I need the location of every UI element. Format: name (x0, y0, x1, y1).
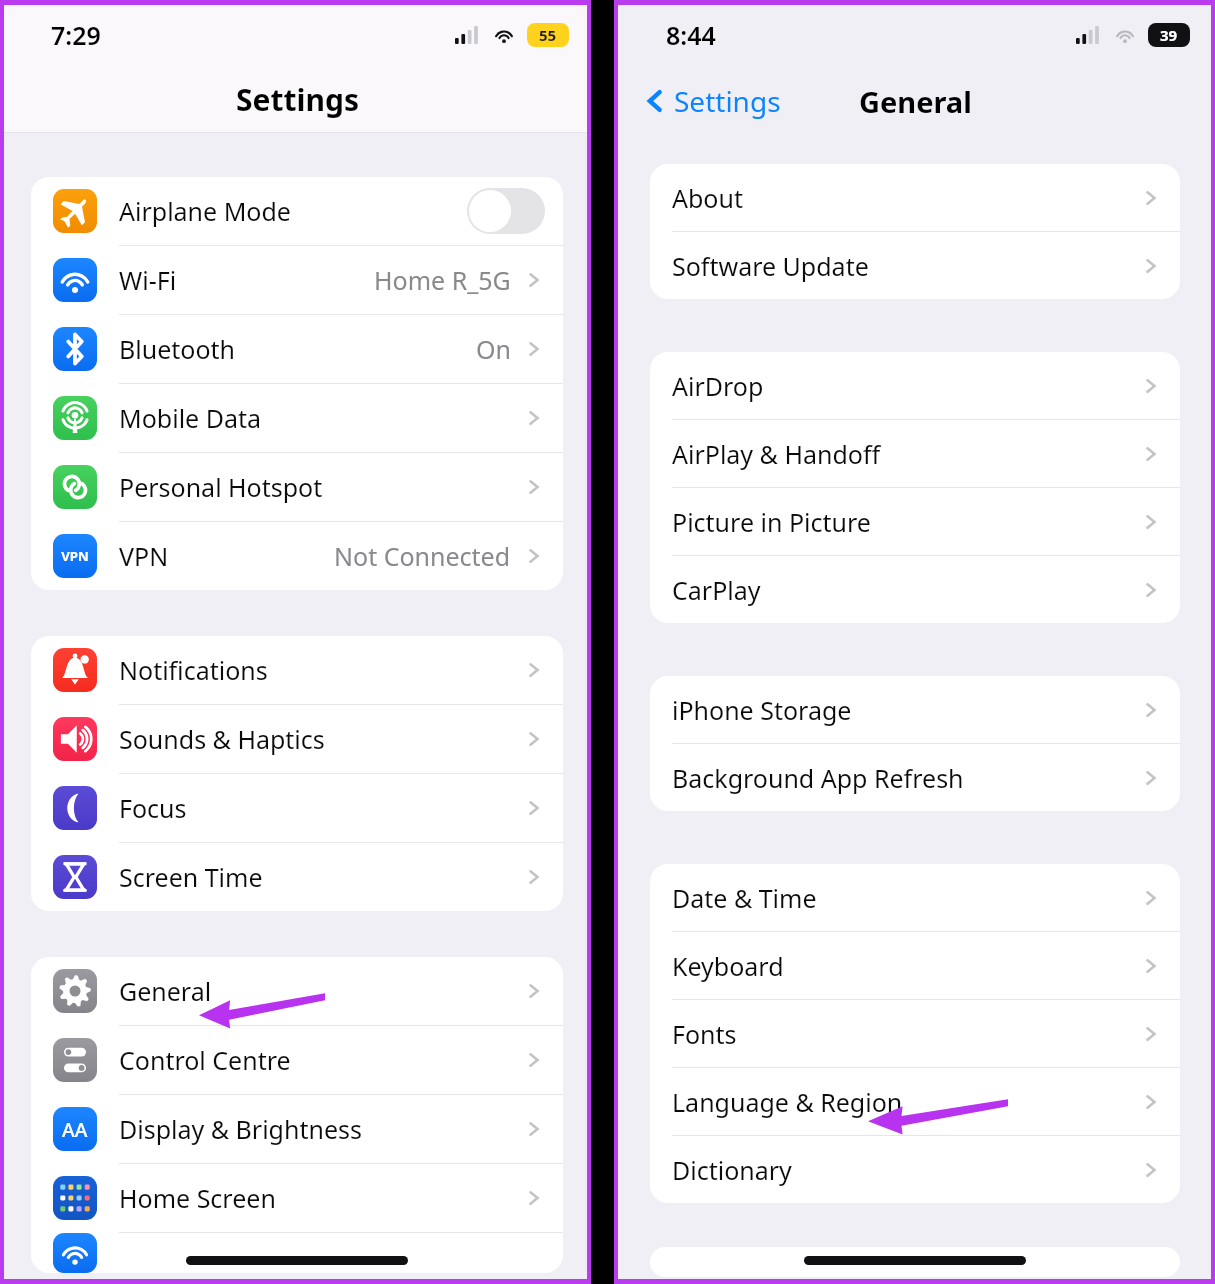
button[interactable]: AA (31, 1095, 563, 1163)
staticText: Bluetooth (119, 332, 236, 366)
button[interactable]: Settings (636, 76, 787, 126)
button[interactable]: CarPlay (650, 556, 1180, 623)
staticText: CarPlay (672, 573, 761, 607)
staticText: 7:29 (51, 18, 101, 52)
button[interactable]: iPhone Storage (650, 676, 1180, 743)
staticText: About (672, 181, 743, 215)
button[interactable]: Keyboard (650, 932, 1180, 999)
staticText: Not Connected (334, 539, 511, 573)
staticText: AirPlay & Handoff (672, 437, 881, 471)
button[interactable]: Date & Time (650, 864, 1180, 931)
staticText: Fonts (672, 1017, 737, 1051)
staticText: Language & Region (672, 1085, 903, 1119)
staticText: Control Centre (119, 1043, 291, 1077)
button[interactable]: Background App Refresh (650, 744, 1180, 811)
staticText: Settings (674, 82, 781, 120)
staticText: Focus (119, 791, 187, 825)
staticText: Background App Refresh (672, 761, 964, 795)
staticText: Personal Hotspot (119, 470, 323, 504)
button[interactable]: Fonts (650, 1000, 1180, 1067)
button[interactable]: Bluetooth (31, 315, 563, 383)
staticText: VPN (61, 547, 89, 565)
staticText: Software Update (672, 249, 869, 283)
button[interactable]: VPN (31, 522, 563, 590)
staticText: VPN (119, 539, 169, 573)
staticText: General (119, 974, 212, 1008)
staticText: Airplane Mode (119, 194, 291, 228)
staticText: Keyboard (672, 949, 784, 983)
staticText: General (859, 82, 972, 121)
staticText: 8:44 (666, 18, 716, 52)
button[interactable]: Screen Time (31, 843, 563, 911)
button[interactable]: Mobile Data (31, 384, 563, 452)
button[interactable]: Personal Hotspot (31, 453, 563, 521)
staticText: Wi-Fi (119, 263, 177, 297)
button[interactable] (31, 1233, 563, 1273)
staticText: Picture in Picture (672, 505, 871, 539)
staticText: Mobile Data (119, 401, 262, 435)
button[interactable]: Control Centre (31, 1026, 563, 1094)
staticText: Notifications (119, 653, 268, 687)
staticText: AirDrop (672, 369, 764, 403)
staticText: On (476, 332, 511, 366)
staticText: Display & Brightness (119, 1112, 362, 1146)
staticText: Screen Time (119, 860, 263, 894)
button[interactable]: Focus (31, 774, 563, 842)
button[interactable]: Dictionary (650, 1136, 1180, 1203)
button[interactable]: Wi-Fi (31, 246, 563, 314)
staticText: Home Screen (119, 1181, 276, 1215)
staticText: Date & Time (672, 881, 817, 915)
staticText: Dictionary (672, 1153, 792, 1187)
staticText: 55 (539, 25, 557, 45)
button[interactable]: General (31, 957, 563, 1025)
button[interactable]: Airplane Mode (31, 177, 563, 245)
button[interactable]: Home Screen (31, 1164, 563, 1232)
staticText: Settings (236, 79, 359, 120)
button[interactable]: Software Update (650, 232, 1180, 299)
button[interactable]: Sounds & Haptics (31, 705, 563, 773)
staticText: iPhone Storage (672, 693, 852, 727)
button[interactable]: AirDrop (650, 352, 1180, 419)
staticText: AA (62, 1116, 88, 1142)
button[interactable]: Notifications (31, 636, 563, 704)
button[interactable]: Airplane Mode toggle (467, 188, 545, 234)
button[interactable]: Language & Region (650, 1068, 1180, 1135)
button[interactable]: Picture in Picture (650, 488, 1180, 555)
button[interactable]: AirPlay & Handoff (650, 420, 1180, 487)
button[interactable]: About (650, 164, 1180, 231)
staticText: 39 (1160, 25, 1178, 45)
staticText: Home R_5G (374, 263, 511, 297)
staticText: Sounds & Haptics (119, 722, 325, 756)
